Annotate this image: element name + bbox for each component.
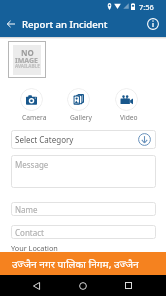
- staticText: Gallery: [70, 113, 93, 122]
- staticText: Select Category: [15, 134, 74, 145]
- staticText: Camera: [22, 113, 47, 122]
- button[interactable]: Back: [0, 11, 22, 37]
- staticText: Your Location: [11, 243, 58, 253]
- button[interactable]: Back: [26, 275, 47, 296]
- staticText: AVAILABLE: [15, 63, 40, 69]
- button[interactable]: Gallery: [56, 88, 100, 122]
- button[interactable]: Incident photo: [8, 41, 46, 78]
- staticText: Contact: [15, 227, 44, 238]
- button[interactable]: Message: [11, 155, 156, 188]
- staticText: IMAGE: [15, 56, 39, 66]
- button[interactable]: Video: [104, 88, 148, 122]
- staticText: NO: [21, 47, 34, 58]
- button[interactable]: Camera: [9, 88, 53, 122]
- staticText: Name: [15, 204, 38, 215]
- button[interactable]: Home: [72, 275, 93, 296]
- staticText: Video: [120, 113, 138, 122]
- staticText: Report an Incident: [22, 18, 108, 31]
- button[interactable]: Contact: [11, 225, 156, 239]
- button[interactable]: Select Category: [11, 130, 156, 149]
- staticText: 7:56: [139, 2, 154, 12]
- button[interactable]: Name: [11, 202, 156, 216]
- button[interactable]: Recent apps: [118, 275, 139, 296]
- staticText: Message: [15, 159, 49, 170]
- button[interactable]: Information: [140, 11, 166, 37]
- staticText: उज्जैन नगर पालिका निगम, उज्जैन: [12, 257, 139, 271]
